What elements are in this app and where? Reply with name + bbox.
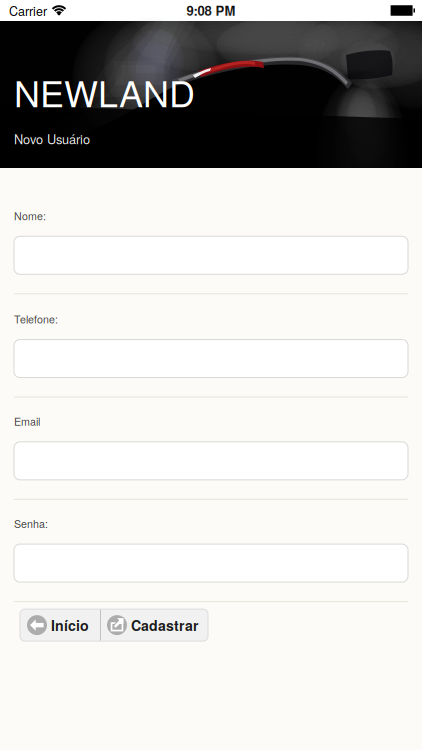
staticText: Carrier — [9, 1, 47, 19]
staticText: Nome: — [14, 208, 46, 223]
staticText: Início — [51, 615, 89, 635]
staticText: NEWLAND — [14, 66, 195, 118]
staticText: Novo Usuário — [14, 130, 90, 148]
button[interactable]: Cadastrar — [101, 609, 208, 641]
button[interactable]: Início — [20, 609, 100, 641]
staticText: Telefone: — [14, 311, 58, 327]
staticText: 9:08 PM — [186, 1, 235, 20]
staticText: Senha: — [14, 516, 48, 531]
staticText: Email — [14, 414, 40, 429]
staticText: Cadastrar — [131, 615, 198, 635]
